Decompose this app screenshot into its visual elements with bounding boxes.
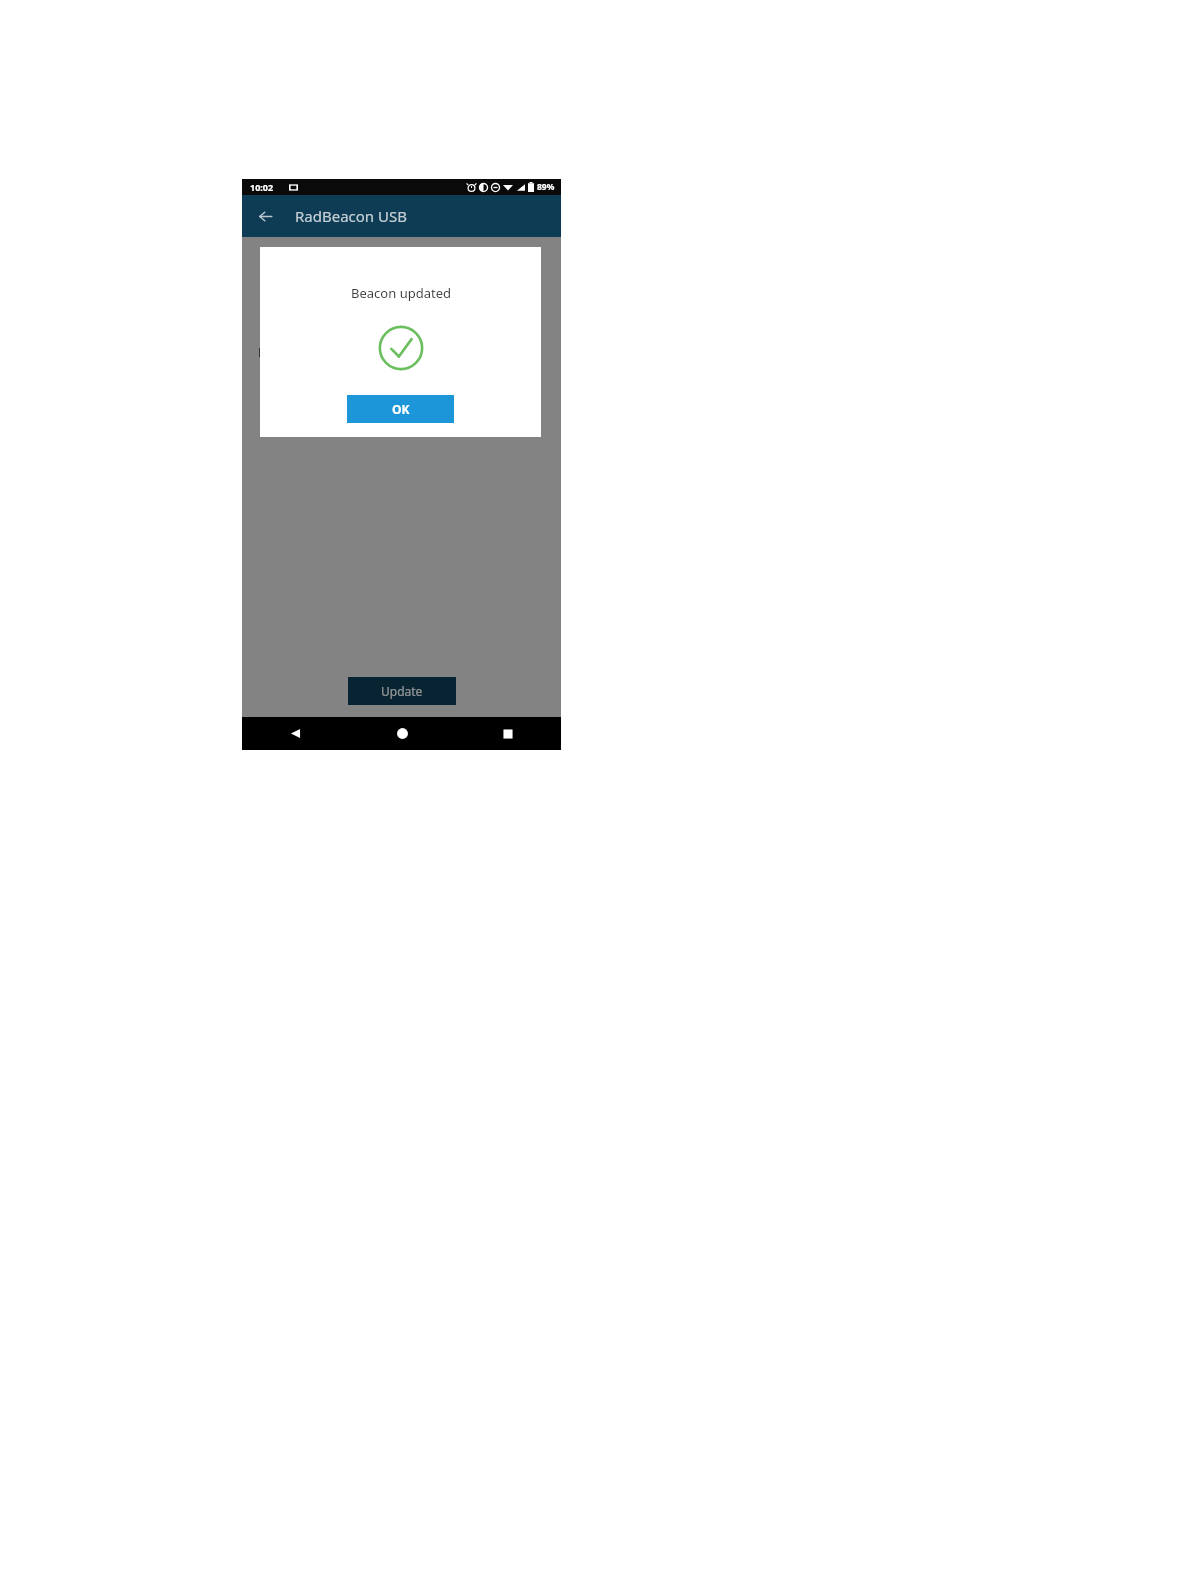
button[interactable]: OK [347, 395, 454, 423]
button[interactable]: Recents [455, 717, 561, 750]
button[interactable]: Home [349, 717, 455, 750]
button[interactable]: Back [242, 717, 349, 750]
staticText: Beacon updated [351, 284, 451, 302]
staticText: OK [392, 401, 410, 417]
staticText: Update [381, 683, 423, 699]
staticText: 89% [537, 181, 555, 193]
staticText: HP Color LaserJet FlowMFP M577 [258, 343, 561, 361]
staticText: RadBeacon USB [295, 206, 407, 226]
button[interactable]: Update [348, 677, 456, 705]
staticText: 10:02 [250, 181, 274, 193]
button[interactable]: Back [250, 201, 280, 231]
